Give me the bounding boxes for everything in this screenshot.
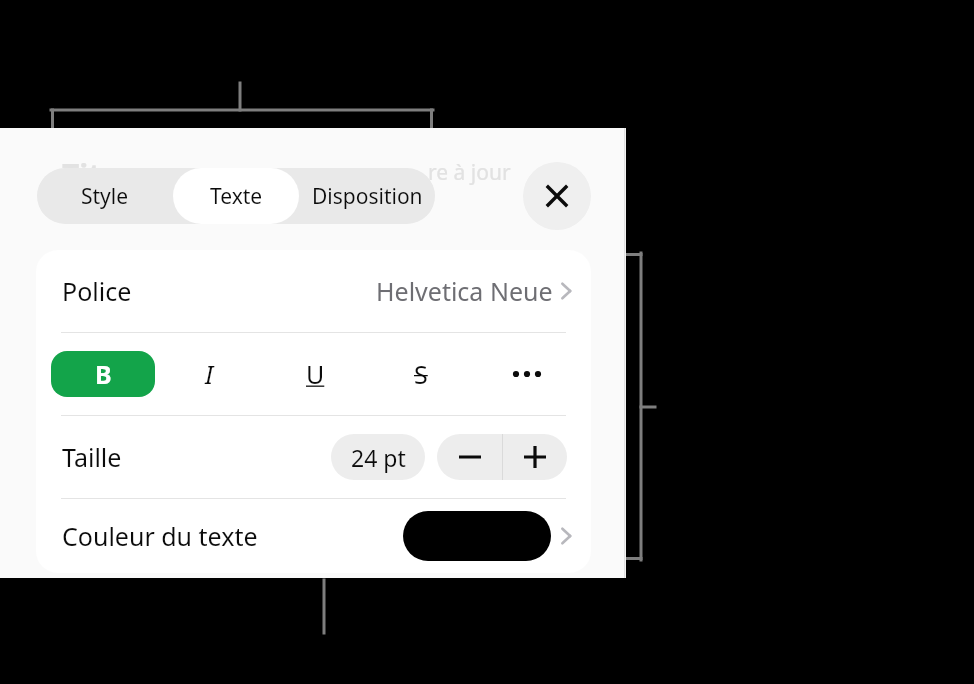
button[interactable]: Couleur noire bbox=[403, 511, 551, 561]
staticText: U bbox=[306, 357, 325, 391]
staticText: Police bbox=[62, 274, 132, 308]
staticText: S bbox=[414, 357, 428, 391]
staticText: Helvetica Neue bbox=[376, 274, 553, 308]
button[interactable]: Augmenter bbox=[503, 434, 567, 480]
staticText: 24 pt bbox=[351, 442, 406, 473]
button[interactable]: Police bbox=[36, 250, 591, 332]
button[interactable]: Réduire bbox=[437, 434, 502, 480]
button[interactable]: Style bbox=[37, 168, 173, 224]
button[interactable]: Fermer bbox=[523, 162, 591, 230]
staticText: Style bbox=[81, 182, 129, 211]
staticText: Titre bbox=[62, 154, 133, 195]
button[interactable]: Souligné bbox=[263, 351, 367, 397]
button[interactable]: Barré bbox=[369, 351, 473, 397]
staticText: Couleur du texte bbox=[62, 519, 258, 553]
button[interactable]: 24 pt bbox=[331, 434, 425, 480]
staticText: I bbox=[205, 357, 214, 391]
staticText: B bbox=[95, 357, 112, 391]
button[interactable]: Plus d'options bbox=[475, 351, 579, 397]
button[interactable]: Texte bbox=[173, 168, 299, 224]
staticText: Disposition bbox=[312, 182, 423, 211]
button[interactable]: Disposition bbox=[299, 168, 435, 224]
button[interactable]: Italique bbox=[157, 351, 261, 397]
staticText: Texte bbox=[210, 182, 263, 211]
button[interactable]: Couleur du texte bbox=[36, 499, 591, 573]
staticText: Taille bbox=[62, 440, 122, 474]
button[interactable]: Gras bbox=[51, 351, 155, 397]
staticText: re à jour bbox=[428, 158, 511, 187]
